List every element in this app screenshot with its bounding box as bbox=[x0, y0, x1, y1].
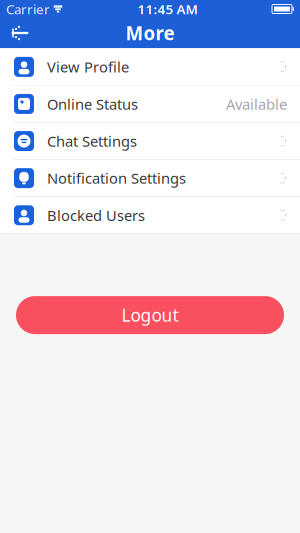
staticText: Logout bbox=[121, 304, 178, 327]
button[interactable]: Blocked Users bbox=[0, 197, 300, 233]
staticText: View Profile bbox=[47, 57, 129, 77]
button[interactable]: Logout bbox=[16, 296, 284, 334]
staticText: Notification Settings bbox=[47, 168, 186, 188]
staticText: Available bbox=[226, 94, 287, 114]
button[interactable]: Online Status bbox=[0, 86, 300, 123]
button[interactable]: View Profile bbox=[0, 49, 300, 86]
staticText: Carrier bbox=[6, 0, 50, 18]
button[interactable]: Back bbox=[0, 18, 40, 48]
staticText: Online Status bbox=[47, 94, 138, 114]
staticText: 11:45 AM bbox=[137, 0, 197, 18]
staticText: Chat Settings bbox=[47, 131, 137, 151]
button[interactable]: Chat Settings bbox=[0, 123, 300, 160]
staticText: Blocked Users bbox=[47, 205, 145, 225]
button[interactable]: Notification Settings bbox=[0, 160, 300, 197]
staticText: More bbox=[125, 21, 174, 45]
